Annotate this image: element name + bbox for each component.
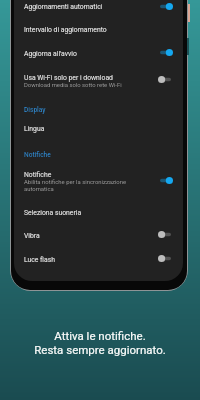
staticText: Usa Wi-Fi solo per i download [24,74,113,82]
staticText: Aggiornamenti automatici [24,3,103,11]
button[interactable]: Luce flash [13,248,182,272]
button[interactable] [159,229,175,240]
staticText: Attiva le notifiche. [54,329,146,342]
staticText: Display [24,106,46,114]
staticText: Seleziona suoneria [24,209,82,217]
staticText: Abilita notifiche per la sincronizzazion… [24,179,127,186]
button[interactable] [159,253,175,264]
staticText: Aggiorna all'avvio [24,50,77,58]
staticText: automatica [24,186,54,193]
staticText: Luce flash [24,256,55,264]
button[interactable]: Lingua [13,117,182,141]
staticText: Notifiche [24,151,51,159]
button[interactable]: Aggiornamenti automatici [13,0,182,19]
button[interactable] [159,175,175,186]
staticText: Download media solo sotto rete Wi-Fi [24,82,122,89]
staticText: Intervallo di aggiornamento [24,26,107,34]
button[interactable]: Vibra [13,224,182,248]
staticText: Vibra [24,232,40,240]
button[interactable]: Intervallo di aggiornamento [13,18,182,42]
button[interactable] [159,1,175,12]
staticText: Resta sempre aggiornato. [34,343,166,356]
button[interactable]: Seleziona suoneria [13,201,182,225]
staticText: Lingua [24,125,45,133]
button[interactable]: Aggiorna all'avvio [13,42,182,66]
button[interactable]: Notifiche [13,163,182,197]
staticText: Notifiche [24,171,52,179]
button[interactable] [159,74,175,85]
button[interactable]: Usa Wi-Fi solo per i download [13,66,182,94]
button[interactable] [159,47,175,58]
